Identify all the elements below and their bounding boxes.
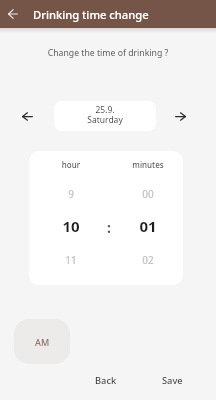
button[interactable]: Next day xyxy=(170,106,190,126)
staticText: 11 xyxy=(41,253,101,267)
staticText: minutes xyxy=(118,159,178,170)
staticText: AM xyxy=(35,336,50,348)
button[interactable]: Save xyxy=(152,368,193,393)
button[interactable]: Previous day xyxy=(17,106,37,126)
staticText: 10 xyxy=(41,216,101,236)
button[interactable]: Back xyxy=(85,368,127,393)
staticText: hour xyxy=(41,159,101,170)
staticText: 25.9. xyxy=(54,104,156,116)
staticText: 00 xyxy=(118,187,178,201)
staticText: 9 xyxy=(41,187,101,201)
staticText: 02 xyxy=(118,253,178,267)
staticText: Saturday xyxy=(54,114,156,126)
staticText: : xyxy=(107,218,111,237)
button[interactable]: 25.9. xyxy=(54,101,156,131)
staticText: Save xyxy=(162,374,183,387)
staticText: 01 xyxy=(118,216,178,236)
staticText: Change the time of drinking ? xyxy=(0,47,216,59)
staticText: Drinking time change xyxy=(33,7,149,22)
button[interactable]: Back xyxy=(0,1,26,27)
staticText: Back xyxy=(95,374,117,387)
button[interactable]: AM xyxy=(14,319,70,364)
